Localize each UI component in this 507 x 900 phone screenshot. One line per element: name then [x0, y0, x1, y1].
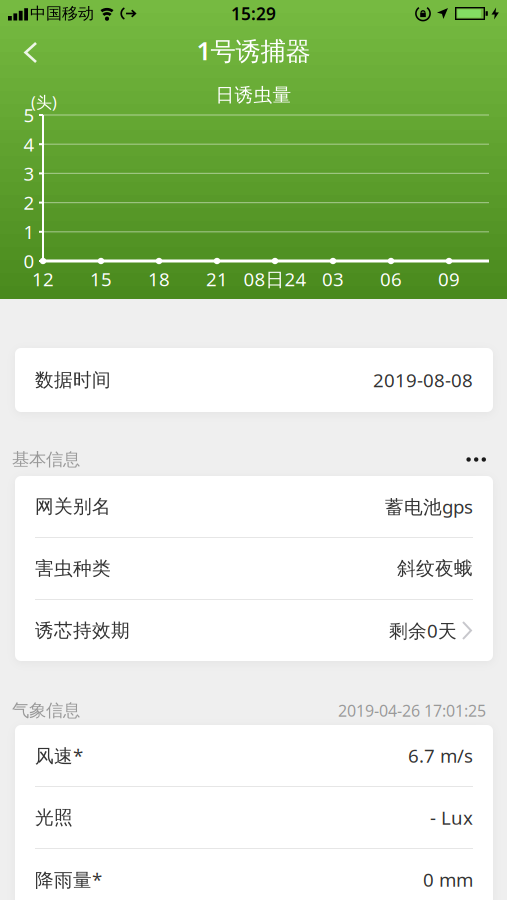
button[interactable]: More: [454, 449, 507, 470]
staticText: 中国移动: [30, 4, 94, 23]
staticText: 降雨量*: [35, 867, 102, 892]
staticText: 0: [23, 249, 34, 273]
staticText: 蓄电池gps: [385, 494, 473, 519]
staticText: 06: [380, 267, 402, 291]
staticText: 诱芯持效期: [35, 619, 130, 642]
staticText: 2019-04-26 17:01:25: [338, 700, 486, 721]
staticText: 15:29: [231, 2, 276, 25]
staticText: 数据时间: [35, 368, 111, 391]
button[interactable]: Back: [8, 30, 63, 74]
staticText: 6.7 m/s: [408, 743, 473, 768]
staticText: 4: [23, 132, 34, 157]
staticText: 12: [32, 267, 54, 291]
staticText: 网关别名: [35, 495, 111, 518]
staticText: 0 mm: [423, 867, 473, 892]
staticText: 18: [148, 267, 170, 291]
staticText: 斜纹夜蛾: [397, 557, 473, 580]
staticText: 光照: [35, 806, 73, 829]
staticText: 08日24: [243, 267, 306, 291]
staticText: 日诱虫量: [215, 83, 291, 106]
staticText: 09: [438, 267, 460, 291]
staticText: 剩余0天: [389, 618, 457, 643]
staticText: 2: [23, 190, 34, 215]
staticText: - Lux: [430, 805, 473, 830]
staticText: (头): [31, 91, 57, 113]
staticText: 3: [23, 161, 34, 186]
staticText: 基本信息: [12, 449, 80, 470]
button[interactable]: 数据时间: [0, 348, 507, 412]
staticText: 15: [90, 267, 112, 291]
staticText: 2019-08-08: [373, 368, 473, 392]
staticText: 风速*: [35, 743, 83, 768]
staticText: 5: [23, 103, 34, 127]
staticText: 21: [206, 267, 228, 291]
staticText: 1: [23, 219, 34, 244]
staticText: 害虫种类: [35, 557, 111, 580]
staticText: 1号诱捕器: [196, 34, 310, 67]
button[interactable]: 诱芯持效期: [15, 600, 493, 661]
staticText: 气象信息: [12, 700, 80, 721]
staticText: 03: [322, 267, 344, 291]
